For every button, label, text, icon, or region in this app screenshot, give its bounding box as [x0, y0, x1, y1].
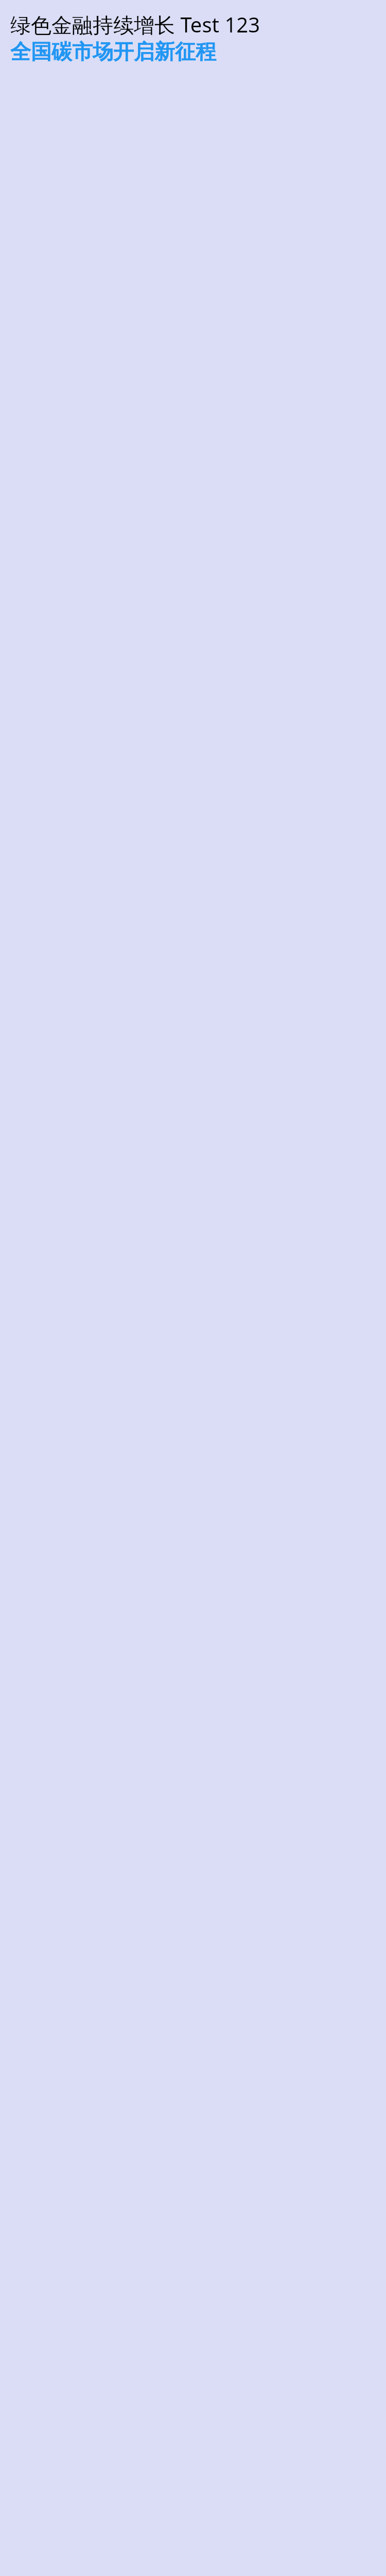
- staticText: 全国碳市场开启新征程: [10, 39, 216, 64]
- staticText: 绿色金融持续增长 Test 123: [10, 10, 260, 39]
